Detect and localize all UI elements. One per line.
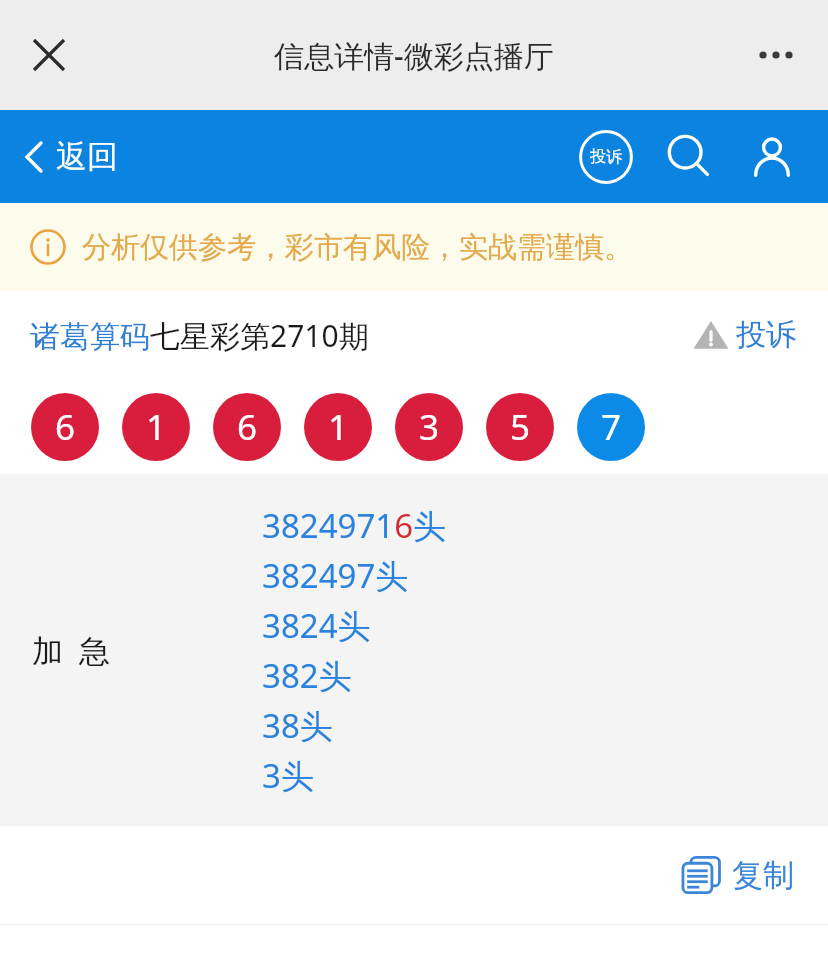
staticText: 信息详情-微彩点播厅	[274, 35, 554, 76]
staticText: 3824头	[262, 603, 371, 648]
button[interactable]: 返回	[16, 129, 126, 184]
staticText: 投诉	[590, 147, 622, 167]
staticText: 返回	[56, 137, 118, 176]
button[interactable]: Close	[18, 24, 80, 86]
button[interactable]: Search	[659, 127, 719, 187]
staticText: 38头	[262, 703, 333, 748]
staticText: 6	[55, 403, 76, 451]
staticText: 加 急	[32, 629, 111, 671]
staticText: 382497头	[262, 553, 409, 598]
staticText: 38249716头	[262, 503, 447, 548]
staticText: 1	[328, 403, 349, 451]
staticText: 1	[146, 403, 167, 451]
staticText: 3头	[262, 753, 314, 798]
staticText: 投诉	[736, 316, 796, 354]
staticText: 复制	[732, 856, 794, 895]
button[interactable]: 投诉 Complaint	[576, 127, 636, 187]
button[interactable]: More options	[746, 25, 806, 85]
button[interactable]: Profile	[742, 127, 802, 187]
button[interactable]: 投诉	[688, 312, 800, 358]
staticText: 诸葛算码七星彩第2710期	[30, 315, 369, 356]
staticText: 5	[510, 403, 531, 451]
staticText: 6	[237, 403, 258, 451]
staticText: 3	[419, 403, 440, 451]
button[interactable]: 复制	[674, 848, 800, 902]
staticText: 382头	[262, 653, 352, 698]
staticText: 7	[601, 403, 622, 451]
staticText: 分析仅供参考，彩市有风险，实战需谨慎。	[82, 229, 633, 266]
